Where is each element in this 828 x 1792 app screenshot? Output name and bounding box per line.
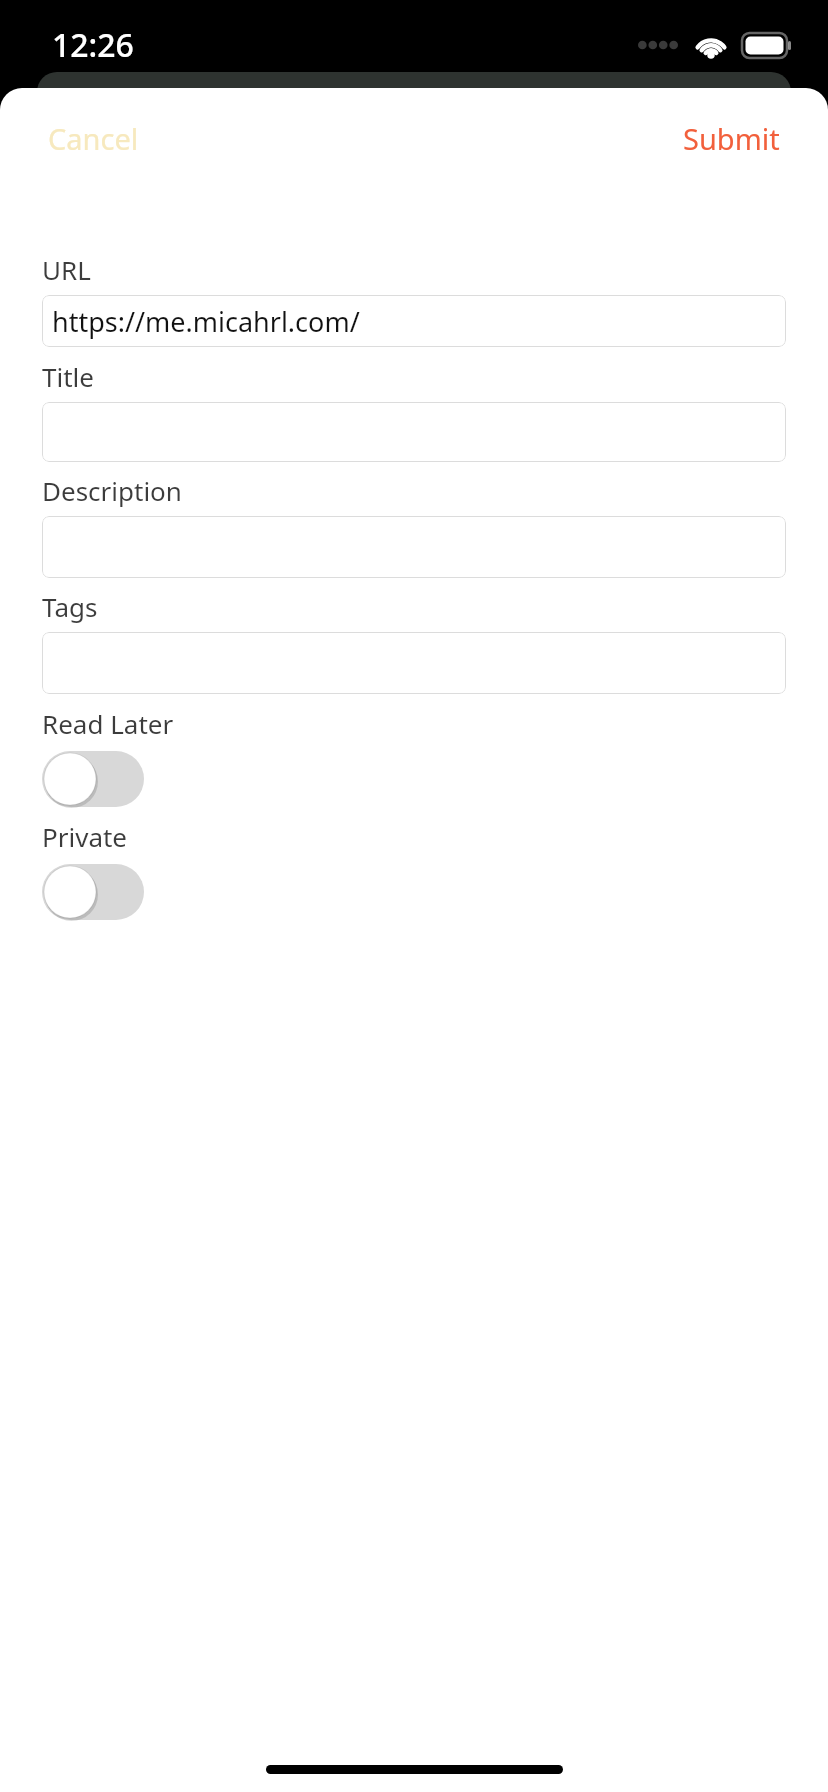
button[interactable]: https://me.micahrl.com/ [42, 295, 786, 347]
staticText: Cancel [48, 119, 139, 158]
staticText: Private [42, 819, 128, 854]
button[interactable]: Cancel [30, 109, 157, 168]
staticText: Description [42, 473, 182, 508]
staticText: Read Later [42, 706, 174, 741]
button[interactable]: Private toggle [42, 864, 144, 920]
staticText: 12:26 [52, 23, 134, 67]
button[interactable] [42, 402, 786, 462]
staticText: URL [42, 252, 91, 287]
button[interactable]: Read Later toggle [42, 751, 144, 807]
staticText: Tags [42, 589, 98, 624]
button[interactable] [42, 516, 786, 578]
button[interactable] [42, 632, 786, 694]
staticText: https://me.micahrl.com/ [52, 303, 360, 340]
button[interactable]: Submit [665, 109, 798, 168]
staticText: Submit [683, 119, 780, 158]
staticText: Title [42, 359, 94, 394]
